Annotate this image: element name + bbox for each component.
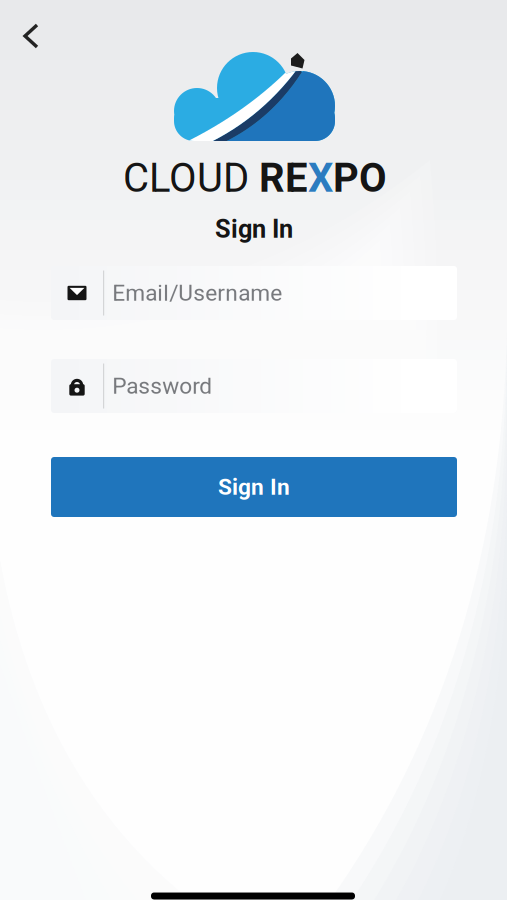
staticText: RE: [259, 155, 308, 201]
staticText: PO: [333, 155, 387, 201]
button[interactable]: Back: [9, 14, 53, 58]
staticText: X: [308, 155, 333, 201]
staticText: Sign In: [215, 214, 293, 244]
staticText: Email/Username: [112, 280, 282, 306]
staticText: Sign In: [218, 474, 290, 500]
button[interactable]: Sign In: [51, 457, 457, 517]
staticText: CLOUD: [123, 155, 249, 201]
staticText: Password: [112, 373, 212, 399]
